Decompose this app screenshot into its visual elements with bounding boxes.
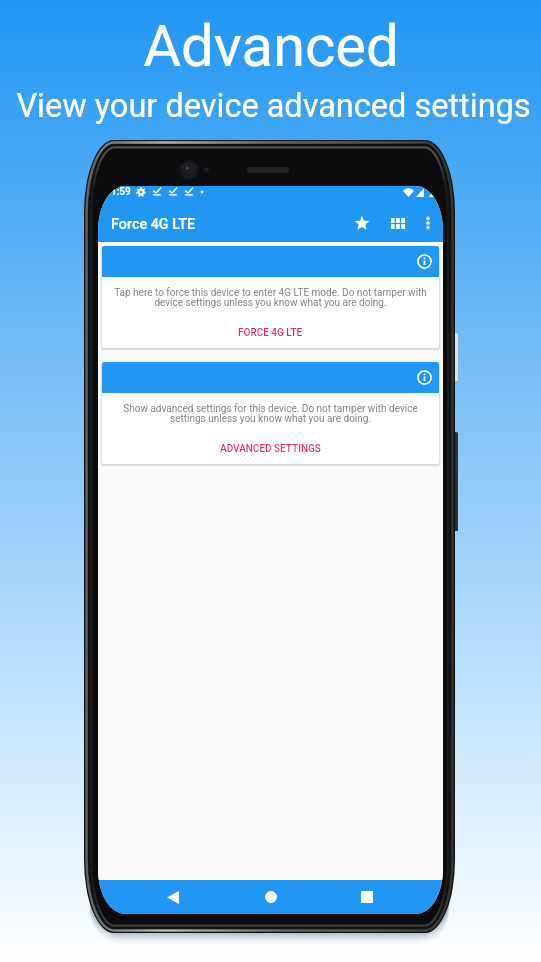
staticText: Force 4G LTE [111, 216, 196, 233]
staticText: FORCE 4G LTE [238, 327, 303, 339]
button[interactable]: Favorite [347, 208, 377, 238]
button[interactable]: Grid view [383, 208, 413, 238]
staticText: View your device advanced settings [16, 87, 531, 125]
staticText: Tap here to force this device to enter 4… [114, 287, 427, 309]
staticText: Advanced [143, 12, 399, 80]
button[interactable]: Show advanced settings for this device. … [102, 362, 439, 464]
button[interactable]: More options [413, 208, 443, 238]
button[interactable]: Home [254, 880, 288, 914]
staticText: 1:59 [111, 186, 131, 198]
button[interactable]: Recents [350, 880, 384, 914]
staticText: ADVANCED SETTINGS [220, 443, 321, 455]
button[interactable]: Back [156, 880, 190, 914]
staticText: Show advanced settings for this device. … [114, 403, 427, 425]
button[interactable]: Tap here to force this device to enter 4… [102, 246, 439, 348]
